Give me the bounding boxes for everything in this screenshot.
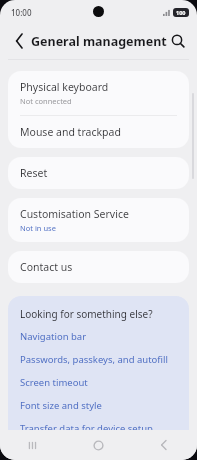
button[interactable]: Screen timeout <box>20 376 177 389</box>
button[interactable]: Customisation Service <box>8 198 189 242</box>
staticText: General management <box>31 33 167 50</box>
staticText: 10:00 <box>11 7 32 18</box>
button[interactable]: Back <box>131 430 197 460</box>
staticText: 100 <box>176 9 186 16</box>
button[interactable]: Navigate up <box>6 28 32 54</box>
button[interactable]: Recent apps <box>0 430 65 460</box>
staticText: Passwords, passkeys, and autofill <box>20 353 168 366</box>
staticText: Physical keyboard <box>20 80 109 94</box>
button[interactable]: Font size and style <box>20 399 177 412</box>
staticText: Mouse and trackpad <box>20 125 121 139</box>
button[interactable]: Home <box>65 430 131 460</box>
staticText: Contact us <box>20 260 73 274</box>
button[interactable]: Passwords, passkeys, and autofill <box>20 353 177 366</box>
staticText: Looking for something else? <box>20 307 153 321</box>
button[interactable]: Mouse and trackpad <box>8 116 189 148</box>
staticText: Not connected <box>20 96 72 106</box>
button[interactable]: Navigation bar <box>20 330 177 343</box>
staticText: Font size and style <box>20 399 102 412</box>
staticText: Navigation bar <box>20 330 87 343</box>
staticText: Reset <box>20 166 48 180</box>
button[interactable]: Transfer data for device setup <box>20 422 177 435</box>
button[interactable]: Contact us <box>8 251 189 283</box>
staticText: Screen timeout <box>20 376 88 389</box>
button[interactable]: Reset <box>8 157 189 189</box>
staticText: Customisation Service <box>20 207 129 221</box>
button[interactable]: Search <box>165 28 191 54</box>
staticText: Transfer data for device setup <box>20 422 153 435</box>
staticText: Not in use <box>20 223 56 233</box>
button[interactable]: Physical keyboard <box>8 71 189 115</box>
